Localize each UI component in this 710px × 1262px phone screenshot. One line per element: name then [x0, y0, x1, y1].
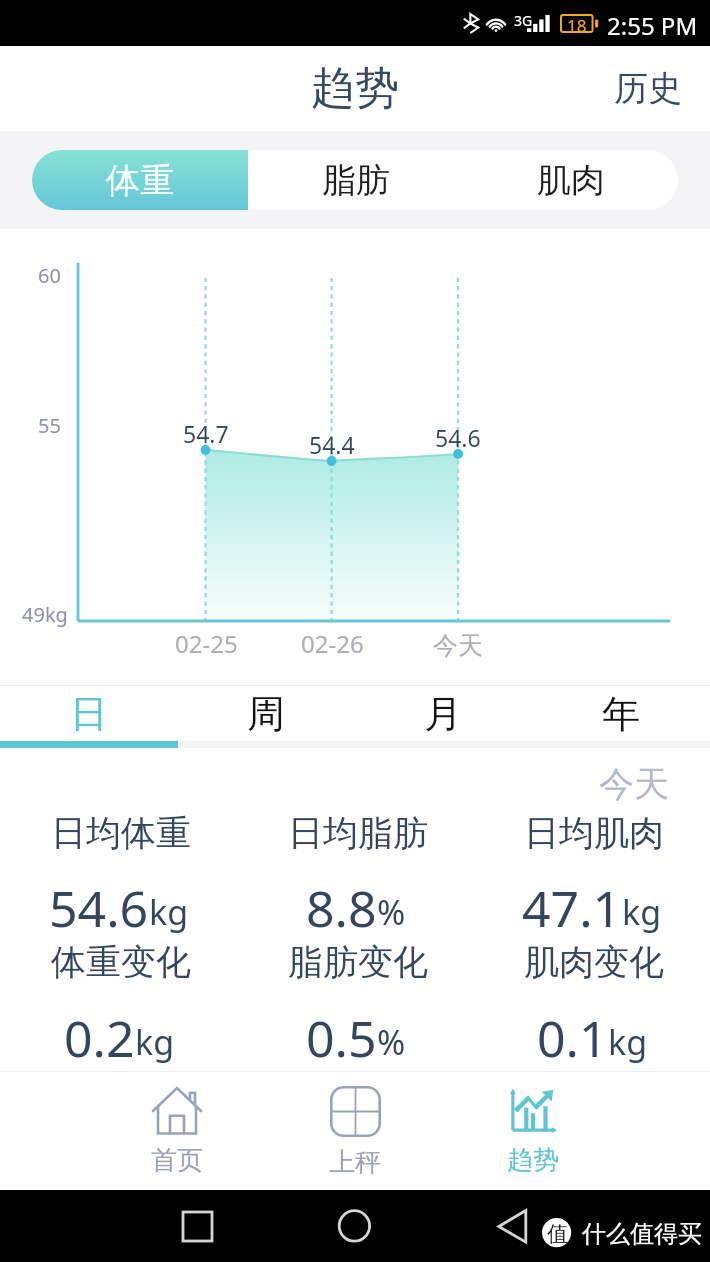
staticText: 0.1	[537, 1004, 608, 1072]
button[interactable]: 历史	[584, 46, 710, 131]
staticText: 年	[602, 690, 640, 738]
button[interactable]: 日	[0, 686, 177, 741]
staticText: 趋势	[507, 1144, 559, 1177]
staticText: 历史	[614, 67, 682, 110]
staticText: 上秤	[329, 1146, 381, 1179]
button[interactable]: 体重	[32, 150, 248, 210]
staticText: 肌肉变化	[524, 940, 664, 984]
staticText: 趋势	[311, 61, 399, 116]
staticText: 月	[424, 690, 462, 738]
button[interactable]: 首页	[88, 1072, 266, 1190]
staticText: 肌肉	[537, 159, 605, 202]
button[interactable]: 趋势	[444, 1072, 622, 1190]
button[interactable]: 肌肉	[463, 150, 678, 210]
staticText: 今天	[599, 762, 669, 806]
button[interactable]: 月	[354, 686, 532, 741]
button[interactable]: Back	[490, 1202, 540, 1252]
staticText: 54.4	[309, 429, 355, 460]
staticText: 54.6	[49, 874, 149, 942]
staticText: kg	[608, 1019, 648, 1065]
staticText: 18	[567, 14, 587, 33]
staticText: 日均脂肪	[288, 811, 428, 855]
staticText: 脂肪变化	[288, 940, 428, 984]
button[interactable]: 上秤	[266, 1072, 444, 1190]
button[interactable]: 周	[177, 686, 354, 741]
button[interactable]: Recent apps	[173, 1202, 223, 1252]
staticText: 体重变化	[51, 940, 191, 984]
staticText: 2:55 PM	[607, 9, 698, 42]
staticText: 54.6	[435, 422, 481, 453]
staticText: 55	[38, 412, 61, 439]
button[interactable]: 脂肪	[248, 150, 463, 210]
staticText: 8.8	[306, 874, 377, 942]
staticText: 3G	[514, 11, 533, 30]
staticText: %	[377, 1019, 406, 1065]
staticText: 02-26	[301, 627, 364, 660]
staticText: 日均肌肉	[524, 811, 664, 855]
staticText: 54.7	[183, 418, 229, 449]
staticText: 什么值得买	[582, 1219, 702, 1249]
staticText: 02-25	[175, 627, 238, 660]
staticText: kg	[622, 889, 662, 935]
staticText: 日均体重	[51, 811, 191, 855]
staticText: 47.1	[522, 874, 622, 942]
button[interactable]: Home	[330, 1201, 380, 1251]
staticText: 脂肪	[322, 159, 390, 202]
staticText: 体重	[106, 159, 174, 202]
staticText: kg	[149, 889, 189, 935]
staticText: 今天	[433, 630, 483, 661]
staticText: 0.2	[64, 1004, 135, 1072]
staticText: 日	[70, 690, 108, 738]
staticText: 0.5	[306, 1004, 377, 1072]
staticText: kg	[135, 1019, 175, 1065]
staticText: 周	[247, 690, 285, 738]
staticText: 49kg	[22, 601, 68, 628]
staticText: 首页	[151, 1144, 203, 1177]
button[interactable]: 年	[532, 686, 710, 741]
staticText: 60	[38, 262, 61, 289]
staticText: 值	[547, 1221, 568, 1247]
staticText: %	[377, 889, 406, 935]
